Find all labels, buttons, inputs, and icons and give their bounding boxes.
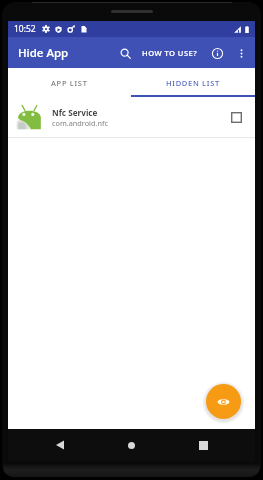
button[interactable]: Recents: [189, 431, 217, 459]
button[interactable]: APP LIST: [8, 68, 131, 97]
button[interactable]: Home: [117, 431, 145, 459]
staticText: APP LIST: [51, 78, 88, 88]
button[interactable]: Back: [46, 431, 74, 459]
button[interactable]: HIDDEN LIST: [131, 68, 255, 97]
button[interactable]: Info: [206, 42, 228, 64]
staticText: Hide App: [18, 45, 69, 61]
button[interactable]: Nfc Service: [8, 97, 255, 138]
staticText: Nfc Service: [52, 107, 98, 118]
staticText: HIDDEN LIST: [166, 78, 220, 88]
staticText: 10:52: [14, 23, 36, 35]
button[interactable]: More options: [230, 42, 252, 64]
staticText: HOW TO USE?: [142, 48, 198, 58]
staticText: com.android.nfc: [52, 118, 108, 128]
button[interactable]: HOW TO USE?: [139, 44, 201, 62]
button[interactable]: Search: [114, 42, 136, 64]
button[interactable]: Show hidden apps: [206, 384, 241, 419]
